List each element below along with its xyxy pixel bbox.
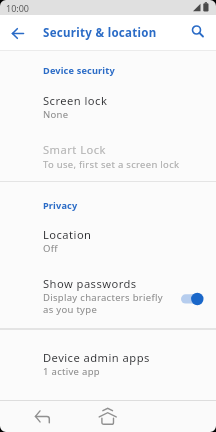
staticText: Location <box>43 227 92 242</box>
staticText: Privacy <box>43 199 78 212</box>
staticText: Device admin apps <box>43 350 150 365</box>
button[interactable]: Device admin apps <box>0 341 216 385</box>
button[interactable] <box>33 405 57 429</box>
staticText: Display characters briefly <box>43 291 163 304</box>
staticText: as you type <box>43 303 98 316</box>
button[interactable] <box>189 24 207 42</box>
staticText: 1 active app <box>43 365 100 378</box>
staticText: Device security <box>43 64 115 77</box>
staticText: Off <box>43 242 58 255</box>
button[interactable] <box>9 24 27 42</box>
button[interactable]: Location <box>0 218 216 262</box>
staticText: 10:00 <box>6 2 30 14</box>
button[interactable]: Privacy <box>0 193 216 217</box>
button[interactable]: Show passwords <box>0 267 216 327</box>
button[interactable]: Device security <box>0 58 216 82</box>
button[interactable]: Smart Lock <box>0 133 216 173</box>
staticText: Show passwords <box>43 276 137 291</box>
staticText: To use, first set a screen lock <box>43 158 180 171</box>
staticText: Smart Lock <box>43 142 106 157</box>
button[interactable] <box>96 403 120 427</box>
staticText: Screen lock <box>43 93 108 108</box>
staticText: None <box>43 108 69 121</box>
button[interactable]: Screen lock <box>0 84 216 128</box>
staticText: Security & location <box>43 25 157 41</box>
